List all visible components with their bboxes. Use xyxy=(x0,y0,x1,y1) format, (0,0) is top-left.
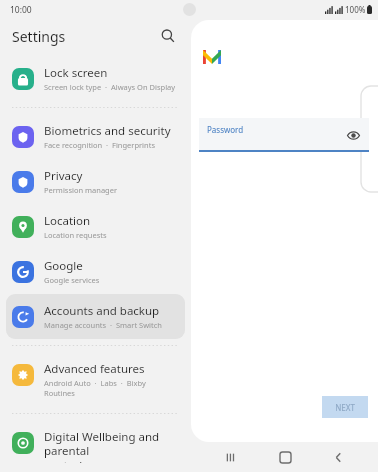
button[interactable]: Location xyxy=(6,204,185,249)
staticText: NEXT xyxy=(335,402,355,413)
button[interactable]: Password xyxy=(199,118,369,152)
button[interactable]: Google xyxy=(6,249,185,294)
button[interactable]: Accounts and backup xyxy=(6,294,185,339)
button[interactable]: Digital Wellbeing and parental xyxy=(6,420,185,472)
button[interactable]: Privacy xyxy=(6,159,185,204)
staticText: Android Auto · Labs · Bixby Routines xyxy=(44,378,177,398)
staticText: Password xyxy=(207,124,244,135)
staticText: Digital Wellbeing and parental xyxy=(44,429,177,458)
button[interactable]: NEXT xyxy=(322,396,368,418)
staticText: Advanced features xyxy=(44,361,145,377)
staticText: Manage accounts · Smart Switch xyxy=(44,320,162,330)
button[interactable]: Biometrics and security xyxy=(6,114,185,159)
staticText: controls xyxy=(44,458,88,463)
button[interactable]: Back xyxy=(325,444,351,470)
staticText: Permission manager xyxy=(44,185,118,195)
staticText: Location requests xyxy=(44,230,107,240)
staticText: Google services xyxy=(44,275,100,285)
staticText: Google xyxy=(44,258,83,274)
staticText: Accounts and backup xyxy=(44,303,160,319)
staticText: Biometrics and security xyxy=(44,123,171,139)
button[interactable]: Show password xyxy=(345,127,361,143)
staticText: Settings xyxy=(12,27,66,46)
staticText: Screen lock type · Always On Display xyxy=(44,82,176,92)
button[interactable]: Advanced features xyxy=(6,352,185,407)
staticText: Location xyxy=(44,213,91,229)
button[interactable]: Home xyxy=(272,444,298,470)
staticText: Lock screen xyxy=(44,65,108,81)
staticText: 10:00 xyxy=(10,4,32,16)
staticText: 100% xyxy=(345,4,366,15)
button[interactable]: Lock screen xyxy=(6,56,185,101)
button[interactable]: Recents xyxy=(218,444,244,470)
staticText: Face recognition · Fingerprints xyxy=(44,140,155,150)
button[interactable]: Search xyxy=(157,25,179,47)
staticText: Privacy xyxy=(44,168,83,184)
